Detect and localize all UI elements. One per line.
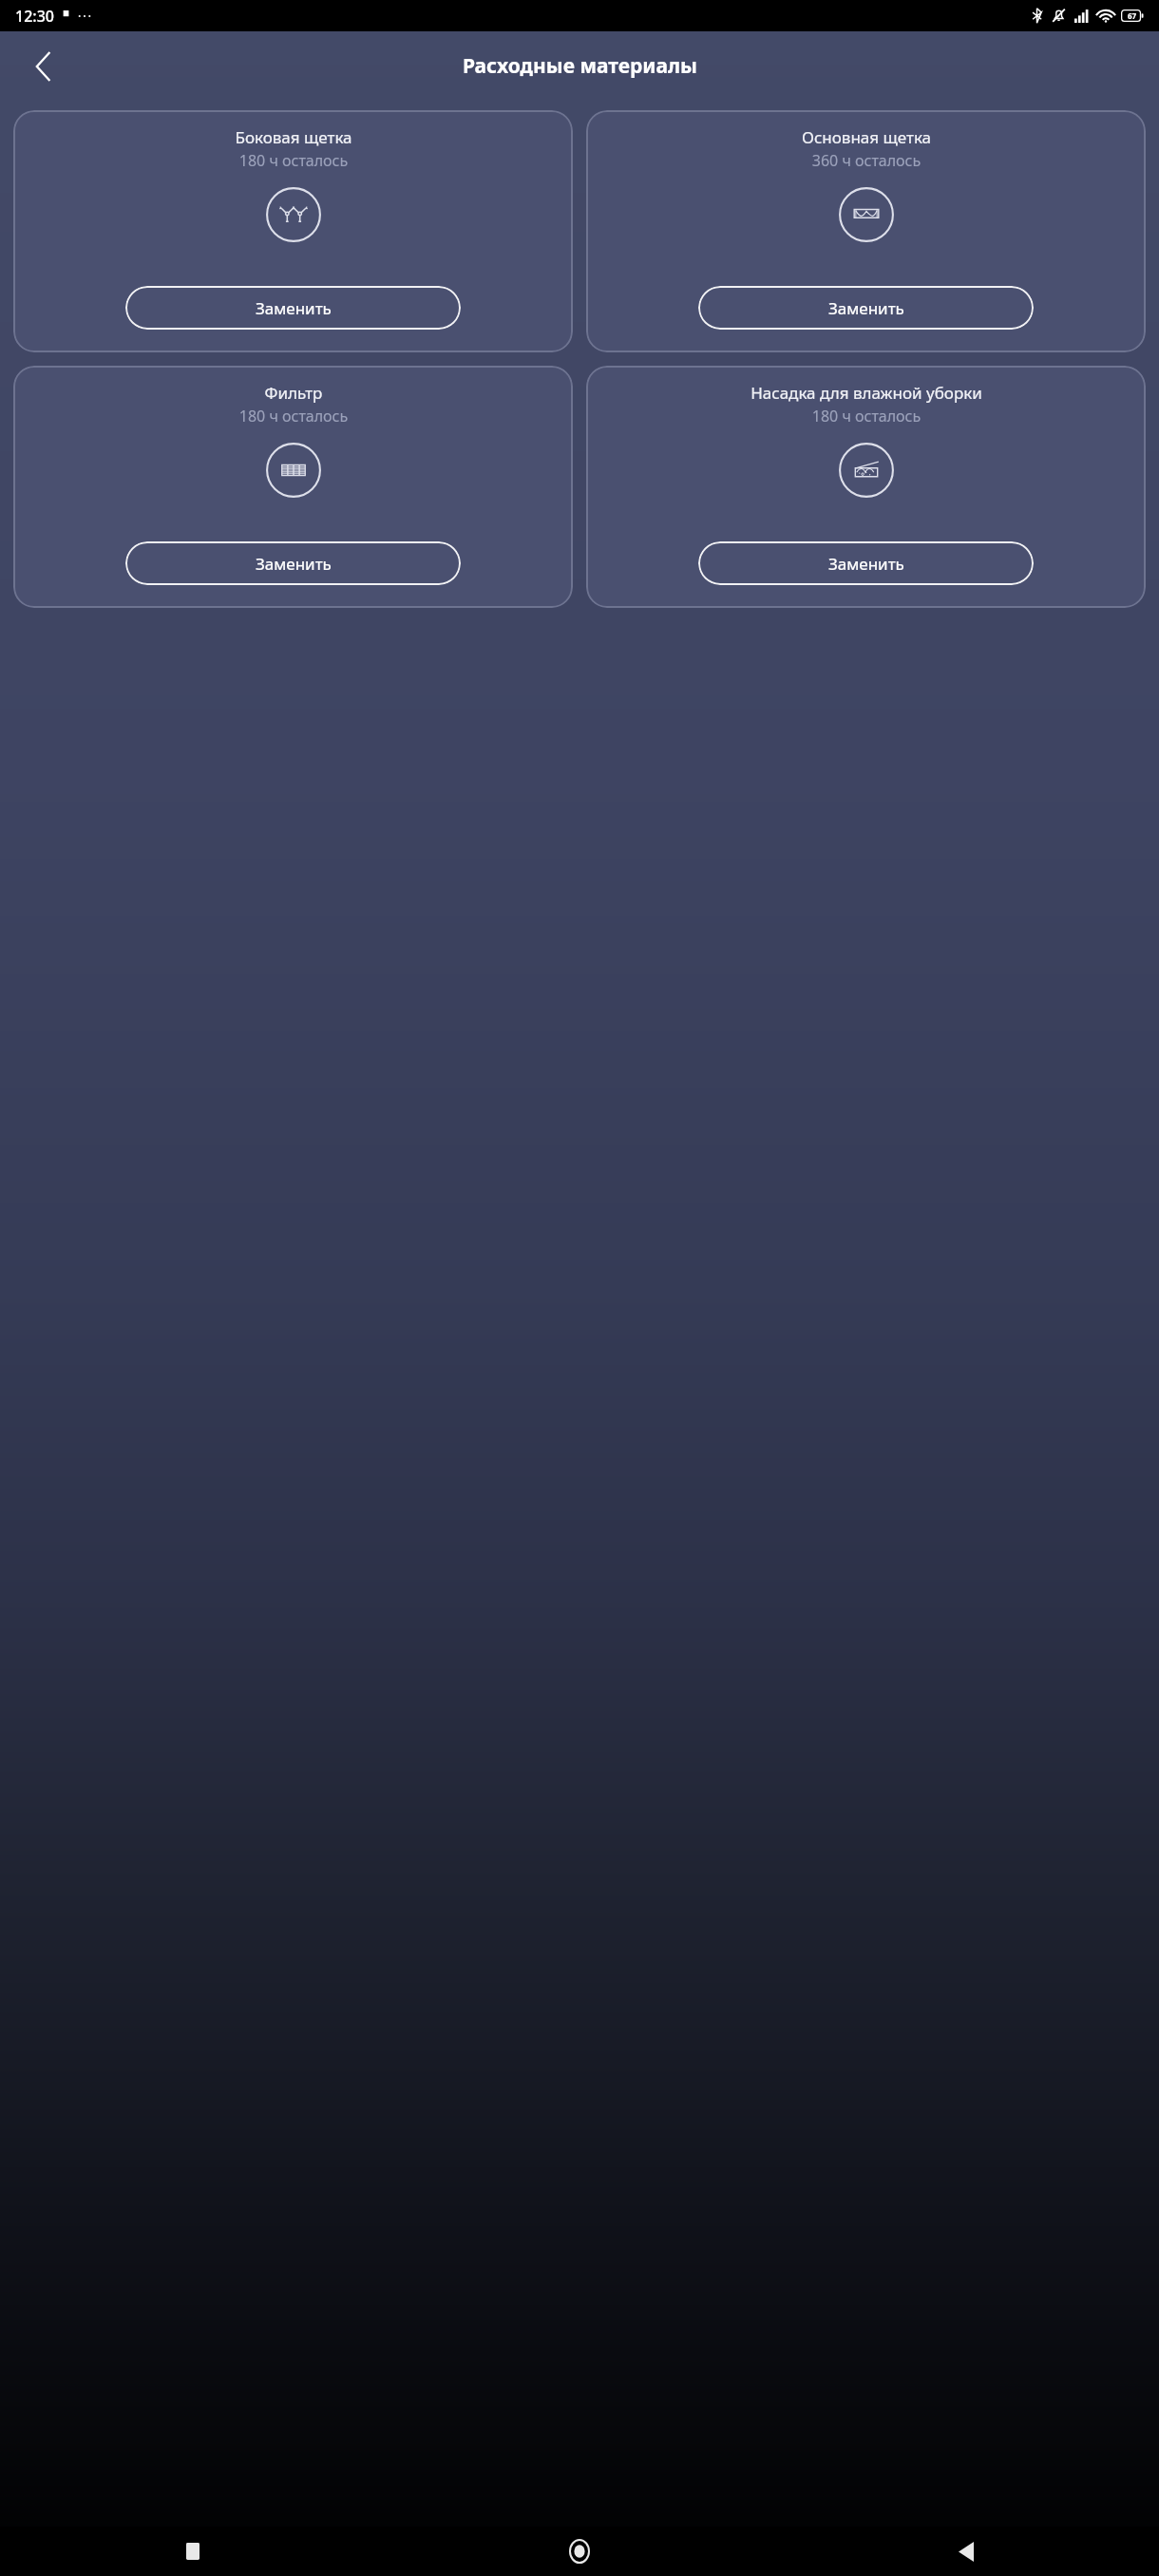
staticText: Заменить <box>256 297 332 319</box>
staticText: 180 ч осталось <box>170 150 417 171</box>
staticText: 360 ч осталось <box>743 150 990 171</box>
staticText: 12:30 <box>15 6 54 27</box>
button[interactable]: Заменить <box>698 286 1034 330</box>
staticText: 67 <box>1128 10 1137 21</box>
button[interactable]: Боковая щетка <box>13 110 573 352</box>
staticText: Фильтр <box>170 382 417 404</box>
staticText: Расходные материалы <box>463 52 697 80</box>
button[interactable]: Заменить <box>125 541 461 585</box>
button[interactable]: Насадка для влажной уборки <box>586 366 1146 608</box>
staticText: Заменить <box>828 553 904 575</box>
button[interactable]: Заменить <box>698 541 1034 585</box>
button[interactable]: Back <box>772 2527 1159 2576</box>
button[interactable]: Home <box>386 2527 772 2576</box>
staticText: Заменить <box>828 297 904 319</box>
staticText: Боковая щетка <box>170 126 417 148</box>
staticText: Насадка для влажной уборки <box>743 382 990 404</box>
button[interactable]: Фильтр <box>13 366 573 608</box>
button[interactable]: Recent apps <box>0 2527 386 2576</box>
staticText: 180 ч осталось <box>170 406 417 426</box>
button[interactable]: Основная щетка <box>586 110 1146 352</box>
button[interactable]: Back <box>19 42 68 91</box>
staticText: 180 ч осталось <box>743 406 990 426</box>
staticText: Заменить <box>256 553 332 575</box>
button[interactable]: Заменить <box>125 286 461 330</box>
staticText: Основная щетка <box>743 126 990 148</box>
